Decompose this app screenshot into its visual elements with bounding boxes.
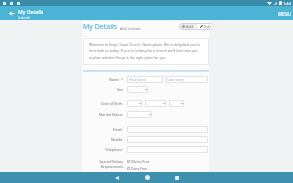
staticText: - [129,112,131,117]
button[interactable]: First name [127,76,163,83]
button[interactable]: Recents [162,172,192,183]
staticText: 1:44 [283,1,291,6]
staticText: My Details [18,8,44,15]
staticText: Edit [204,24,211,29]
button[interactable]: Last name [165,76,208,83]
staticText: - [129,101,131,106]
staticText: My Details [83,22,118,32]
button[interactable]: - [127,100,142,107]
staticText: Date of Birth [101,101,123,106]
staticText: Add [186,24,194,29]
staticText: - [171,101,173,106]
staticText: Last name [167,77,184,82]
staticText: Name [109,77,120,82]
staticText: Telephone [105,147,123,152]
button[interactable]: Edit [197,23,214,30]
staticText: Email [113,127,123,132]
staticText: Marital Status [99,112,123,117]
button[interactable]: Back [4,6,19,20]
staticText: - [129,87,131,92]
button[interactable]: - [127,86,148,93]
button[interactable]: - [145,100,166,107]
staticText: Dairy Free [131,166,148,171]
button[interactable]: Add [179,23,197,30]
button[interactable]: Dairy Free [127,166,148,171]
button[interactable]: MENU [272,7,293,21]
staticText: First name [129,77,146,82]
staticText: Gluten Free [131,159,150,164]
staticText: Mobile [111,137,123,142]
staticText: * [121,77,123,82]
staticText: Add contact [120,26,141,31]
button[interactable]: - [169,100,184,107]
button[interactable] [127,136,208,143]
button[interactable] [127,146,208,153]
staticText: - [147,101,149,106]
staticText: Welcome to Kings' Hope Church, Nottingha… [89,42,202,60]
button[interactable]: Back [102,172,132,183]
staticText: Special Dietary Requirements [99,159,123,169]
button[interactable] [127,126,208,133]
staticText: Sex [117,87,123,92]
staticText: Submit [18,15,30,20]
button[interactable]: Home [132,172,162,183]
button[interactable]: Gluten Free [127,159,150,164]
staticText: MENU [278,11,291,17]
button[interactable]: - [127,111,152,118]
